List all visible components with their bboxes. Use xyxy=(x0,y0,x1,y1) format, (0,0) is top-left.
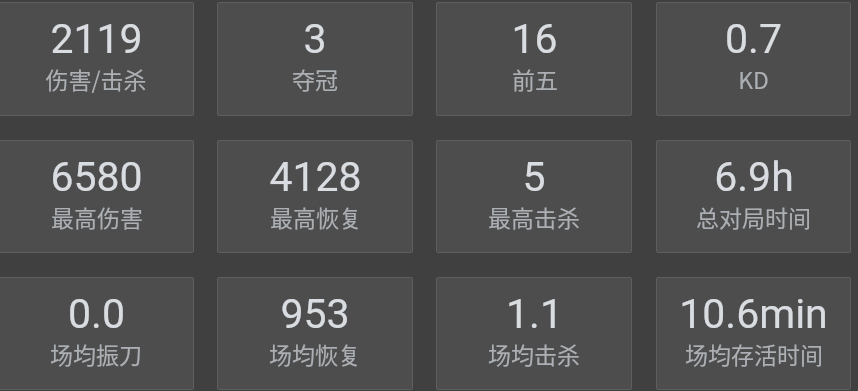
staticText: 0.7 xyxy=(725,15,782,63)
button[interactable]: 953 xyxy=(217,277,413,390)
staticText: 10.6min xyxy=(679,290,828,338)
button[interactable]: 2119 xyxy=(0,2,194,116)
staticText: 5 xyxy=(522,153,546,201)
staticText: 6580 xyxy=(50,153,143,201)
staticText: 0.0 xyxy=(68,290,125,338)
staticText: 伤害/击杀 xyxy=(45,62,147,95)
button[interactable]: 6.9h xyxy=(656,140,851,253)
staticText: 场均击杀 xyxy=(488,337,580,370)
button[interactable]: 0.7 xyxy=(656,2,851,116)
staticText: 夺冠 xyxy=(292,62,338,95)
staticText: 最高伤害 xyxy=(51,200,143,233)
staticText: 2119 xyxy=(50,15,143,63)
button[interactable]: 4128 xyxy=(217,140,413,253)
button[interactable]: 3 xyxy=(217,2,413,116)
button[interactable]: 1.1 xyxy=(436,277,632,390)
staticText: KD xyxy=(738,62,769,95)
staticText: 场均恢复 xyxy=(269,337,361,370)
staticText: 场均存活时间 xyxy=(685,337,823,370)
button[interactable]: 6580 xyxy=(0,140,194,253)
staticText: 最高击杀 xyxy=(488,200,580,233)
staticText: 953 xyxy=(280,290,350,338)
staticText: 16 xyxy=(511,15,558,63)
button[interactable]: 0.0 xyxy=(0,277,194,390)
staticText: 3 xyxy=(303,15,327,63)
staticText: 总对局时间 xyxy=(696,200,811,233)
staticText: 场均振刀 xyxy=(50,337,142,370)
staticText: 1.1 xyxy=(506,290,563,338)
button[interactable]: 5 xyxy=(436,140,632,253)
staticText: 6.9h xyxy=(714,153,794,201)
button[interactable]: 16 xyxy=(436,2,632,116)
staticText: 最高恢复 xyxy=(270,200,362,233)
staticText: 4128 xyxy=(269,153,362,201)
staticText: 前五 xyxy=(512,62,558,95)
button[interactable]: 10.6min xyxy=(656,277,851,390)
